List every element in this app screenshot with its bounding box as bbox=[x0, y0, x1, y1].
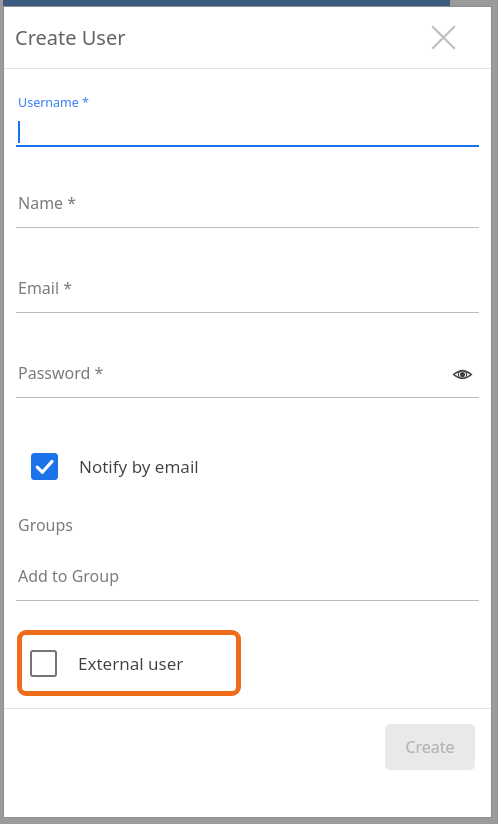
staticText: Create User bbox=[15, 24, 126, 51]
button[interactable]: Create bbox=[385, 724, 475, 770]
staticText: Groups bbox=[18, 514, 74, 536]
button[interactable]: Notify by email bbox=[31, 446, 199, 486]
staticText: Notify by email bbox=[79, 455, 199, 478]
button[interactable]: External user bbox=[30, 630, 241, 696]
staticText: Password * bbox=[18, 362, 104, 384]
button[interactable] bbox=[16, 118, 479, 145]
staticText: Username * bbox=[18, 94, 89, 111]
button[interactable]: Add to Group bbox=[16, 564, 479, 588]
button[interactable]: Name * bbox=[16, 191, 479, 215]
staticText: Add to Group bbox=[18, 565, 120, 587]
staticText: Create bbox=[405, 736, 455, 758]
button[interactable]: Show password bbox=[447, 359, 477, 389]
staticText: Name * bbox=[18, 192, 77, 214]
staticText: Email * bbox=[18, 277, 73, 299]
button[interactable]: Email * bbox=[16, 276, 479, 300]
button[interactable]: Password * bbox=[16, 361, 479, 385]
button[interactable]: Close bbox=[426, 20, 460, 54]
staticText: External user bbox=[78, 652, 184, 675]
